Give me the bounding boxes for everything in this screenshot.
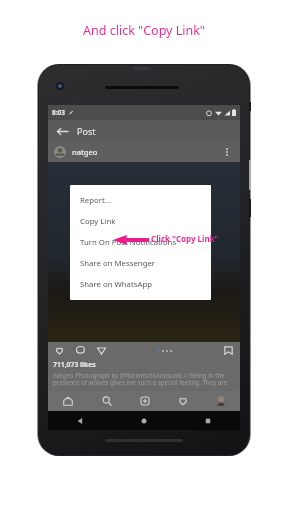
button[interactable]: Search: [87, 391, 126, 411]
button[interactable]: Report...: [70, 190, 211, 211]
staticText: Turn On Post Notifications: [80, 237, 177, 248]
staticText: Click "Copy Link": [151, 233, 219, 244]
button[interactable]: Share on Messenger: [70, 253, 211, 274]
button[interactable]: Turn On Post Notifications: [70, 232, 211, 253]
staticText: natgeo Photograph by @florianschulzvisua…: [53, 371, 235, 387]
button[interactable]: Recents: [176, 411, 240, 430]
staticText: And click "Copy Link": [83, 22, 205, 39]
staticText: Share on WhatsApp: [80, 279, 153, 290]
staticText: Copy Link: [80, 216, 116, 227]
button[interactable]: Copy Link: [70, 211, 211, 232]
button[interactable]: More options: [220, 145, 234, 159]
button[interactable]: Like: [53, 344, 66, 357]
button[interactable]: Share: [95, 344, 108, 357]
staticText: 8:03: [52, 108, 65, 117]
staticText: natgeo: [72, 147, 98, 157]
button[interactable]: Share on WhatsApp: [70, 274, 211, 295]
button[interactable]: Home: [48, 391, 87, 411]
button[interactable]: Save: [222, 344, 235, 357]
button[interactable]: Comment: [74, 344, 87, 357]
staticText: Report...: [80, 195, 112, 206]
button[interactable]: Profile: [202, 391, 240, 411]
button[interactable]: Back: [48, 411, 112, 430]
staticText: Share on Messenger: [80, 258, 156, 269]
staticText: 711,073 likes: [53, 360, 96, 369]
button[interactable]: Activity: [164, 391, 202, 411]
button[interactable]: Create: [126, 391, 164, 411]
button[interactable]: Home: [112, 411, 176, 430]
button[interactable]: Back: [54, 123, 70, 139]
staticText: Post: [77, 125, 96, 137]
